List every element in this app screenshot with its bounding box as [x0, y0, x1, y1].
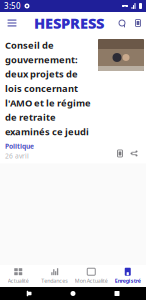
- staticText: Mon Actualité: [75, 277, 108, 284]
- staticText: Politique: [5, 142, 34, 151]
- button[interactable]: Mon Actualité: [73, 265, 109, 287]
- button[interactable]: Tendances: [36, 265, 73, 287]
- staticText: 3:50: [4, 1, 21, 11]
- button[interactable]: Partager: [127, 146, 141, 160]
- button[interactable]: Retour: [14, 287, 44, 300]
- button[interactable]: Actualité: [0, 265, 36, 287]
- button[interactable]: Conseil de gouvernement: deux projets de…: [0, 34, 146, 163]
- button[interactable]: Menu: [0, 12, 24, 34]
- button[interactable]: Enregistré: [109, 265, 146, 287]
- button[interactable]: Rechercher: [114, 12, 130, 34]
- staticText: Enregistré: [115, 277, 141, 284]
- button[interactable]: Enregistrer l'article: [113, 146, 127, 160]
- button[interactable]: Applications récentes: [102, 287, 132, 300]
- staticText: Tendances: [41, 277, 68, 284]
- staticText: 26 avril: [5, 152, 29, 160]
- staticText: HESPRESS: [34, 13, 104, 33]
- staticText: Actualité: [8, 277, 29, 284]
- button[interactable]: Enregistrés: [130, 12, 146, 34]
- staticText: Conseil de gouvernement: deux projets de…: [5, 39, 91, 138]
- button[interactable]: Accueil: [58, 287, 88, 300]
